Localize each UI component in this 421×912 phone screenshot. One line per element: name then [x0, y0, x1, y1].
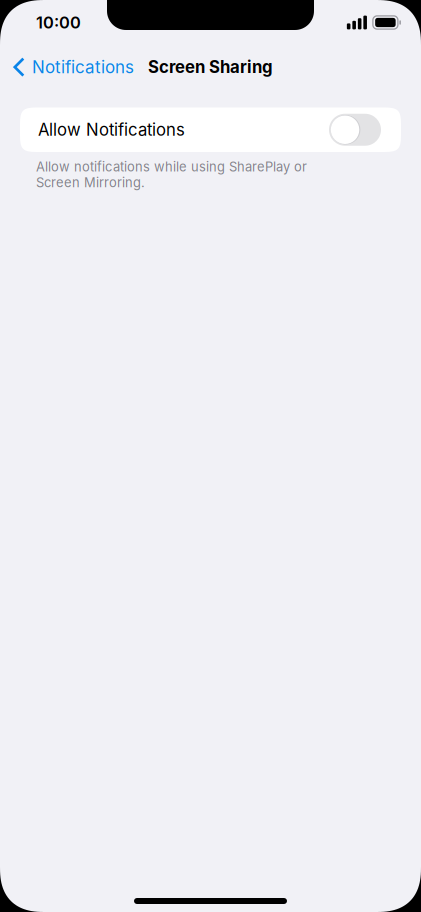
staticText: Notifications — [32, 57, 134, 77]
button[interactable]: Notifications — [0, 51, 142, 83]
staticText: Screen Sharing — [148, 57, 273, 77]
staticText: Allow notifications while using SharePla… — [36, 159, 307, 190]
staticText: Allow Notifications — [38, 120, 185, 140]
staticText: 10:00 — [36, 13, 81, 32]
button[interactable]: Allow Notifications — [20, 107, 401, 152]
